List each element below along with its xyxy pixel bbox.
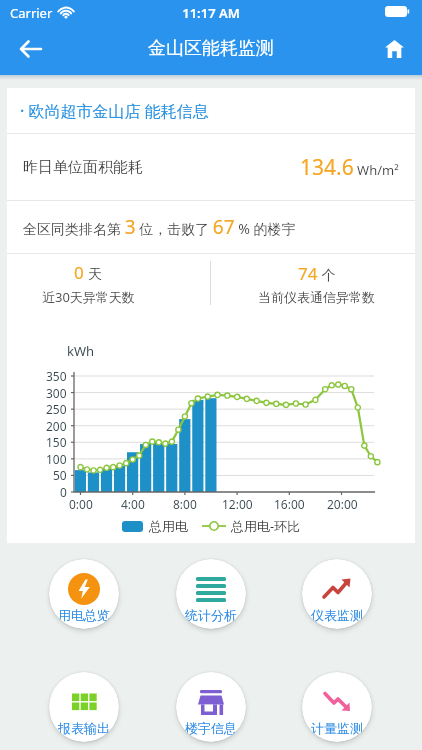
staticText: 8:00 [173, 496, 197, 512]
staticText: 150 [46, 434, 67, 450]
staticText: 计量监测 [311, 720, 363, 736]
staticText: 74 个 [298, 262, 336, 285]
staticText: 报表输出 [58, 720, 110, 736]
staticText: 0 天 [74, 261, 103, 284]
staticText: 0:00 [69, 496, 93, 512]
staticText: 0 [60, 484, 67, 500]
button[interactable] [375, 33, 413, 65]
staticText: 近30天异常天数 [42, 288, 135, 306]
staticText: Carrier [10, 4, 53, 22]
button[interactable]: 用电总览 [49, 559, 119, 629]
staticText: 200 [46, 418, 67, 434]
staticText: · 欧尚超市金山店 能耗信息 [20, 100, 209, 122]
button[interactable]: · 欧尚超市金山店 能耗信息 [7, 88, 415, 133]
button[interactable]: 报表输出 [49, 672, 119, 742]
button[interactable] [12, 35, 48, 63]
staticText: 昨日单位面积能耗 [23, 158, 143, 177]
staticText: 16:00 [274, 496, 305, 512]
staticText: 300 [46, 385, 67, 401]
staticText: 总用电-环比 [231, 517, 301, 535]
staticText: 20:00 [327, 496, 358, 512]
staticText: 250 [46, 401, 67, 417]
staticText: 总用电 [149, 518, 188, 534]
button[interactable]: 统计分析 [176, 559, 246, 629]
staticText: 350 [46, 368, 67, 384]
staticText: 100 [46, 451, 67, 467]
button[interactable]: 计量监测 [302, 672, 372, 742]
staticText: 全区同类排名第 3 位，击败了 67 % 的楼宇 [23, 214, 296, 240]
button[interactable]: 楼宇信息 [176, 672, 246, 742]
staticText: 50 [53, 467, 67, 483]
staticText: 4:00 [121, 496, 145, 512]
staticText: 12:00 [222, 496, 253, 512]
staticText: kWh [67, 342, 95, 360]
staticText: 用电总览 [58, 607, 110, 623]
staticText: 11:17 AM [0, 4, 422, 22]
staticText: 金山区能耗监测 [0, 37, 422, 60]
staticText: 当前仪表通信异常数 [258, 289, 375, 305]
button[interactable]: 仪表监测 [302, 559, 372, 629]
staticText: 134.6 Wh/m² [300, 153, 399, 182]
staticText: 统计分析 [185, 607, 237, 623]
staticText: 楼宇信息 [185, 720, 237, 736]
staticText: 仪表监测 [311, 607, 363, 623]
